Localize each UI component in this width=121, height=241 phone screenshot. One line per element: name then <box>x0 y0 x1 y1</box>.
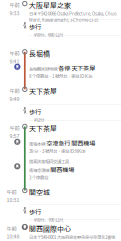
button[interactable]: 午前10:31 <box>0 0 121 239</box>
button[interactable]: 歩行 <box>0 0 121 239</box>
staticText: 歩行 <box>29 107 41 116</box>
staticText: 搭乘該車相同交通工具 <box>29 158 69 165</box>
staticText: 南海空港線 <box>29 167 49 173</box>
staticText: 長堀鶴見緑地線 <box>29 66 57 72</box>
button[interactable]: 搭乘該車相同交通工具 <box>0 0 121 239</box>
button[interactable]: 南海本線 <box>0 0 121 239</box>
staticText: 約9分、690 公尺 <box>34 32 63 38</box>
button[interactable]: 歩行 <box>0 0 121 239</box>
button[interactable]: 午前9:33 <box>0 0 121 239</box>
button[interactable]: 午前10:48 <box>0 0 121 240</box>
staticText: 長堀橋 <box>29 48 50 58</box>
staticText: 天下茶屋 <box>29 86 57 96</box>
staticText: 日本〒542-0066 Osaka Prefecture, Osaka, Chu… <box>29 10 117 23</box>
button[interactable]: 午前9:41 <box>0 0 121 239</box>
staticText: 約2分 <box>34 117 44 123</box>
staticText: 午前9:49 <box>9 87 19 102</box>
staticText: 午前9:41 <box>9 49 19 65</box>
staticText: 南海本線 <box>29 141 45 147</box>
button[interactable]: 午前9:49 <box>0 0 121 239</box>
staticText: 天下茶屋 <box>29 123 57 133</box>
staticText: 日本〒549-0001 大阪府泉佐野市泉州空港北1番地 <box>29 234 115 240</box>
staticText: 空港急行 關西機場 <box>46 139 95 147</box>
staticText: 歩行 <box>29 22 41 31</box>
button[interactable]: 午前9:57 <box>0 0 121 239</box>
staticText: 關西國際中心 <box>29 224 71 234</box>
staticText: 各停 天下茶屋 <box>58 64 95 72</box>
staticText: 3 个停靠站 <box>29 174 48 181</box>
staticText: 關西機場 <box>50 165 74 174</box>
staticText: 歩行 <box>29 207 41 216</box>
button[interactable]: 長堀鶴見緑地線 <box>0 0 121 239</box>
staticText: 8 个停靠站 · 1 號月台 · 車站 ID:K36 <box>29 73 92 79</box>
staticText: 午前9:57 <box>9 124 19 140</box>
staticText: 大阪星屋之家 <box>29 0 71 10</box>
staticText: 約9分、700 公尺 <box>34 217 63 223</box>
staticText: 39 分 · 3 號月台 · 車站 ID:NK09 <box>29 148 85 154</box>
staticText: 關空城 <box>29 187 50 197</box>
staticText: 午前10:31 <box>6 188 19 204</box>
staticText: 午前10:48 <box>6 225 19 240</box>
button[interactable]: 歩行 <box>0 0 121 239</box>
staticText: 午前9:33 <box>9 1 19 17</box>
